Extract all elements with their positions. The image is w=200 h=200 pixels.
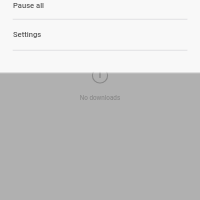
button[interactable]: Settings — [0, 20, 200, 51]
staticText: Pause all — [13, 1, 45, 10]
staticText: Settings — [13, 30, 42, 39]
button[interactable]: Pause all — [0, 0, 200, 20]
staticText: No downloads — [0, 94, 200, 101]
other: Download — [92, 67, 108, 83]
